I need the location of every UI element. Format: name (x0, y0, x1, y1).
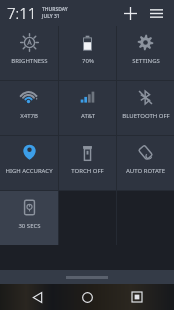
button[interactable]: AUTO ROTATE (117, 136, 174, 190)
button[interactable]: SETTINGS (117, 26, 174, 80)
button[interactable]: 30 SECS (0, 191, 58, 245)
button[interactable]: Add (118, 1, 142, 25)
button[interactable]: BRIGHTNESS (0, 26, 58, 80)
staticText: AUTO ROTATE (126, 167, 165, 175)
staticText: 70% (82, 57, 94, 65)
button[interactable]: TORCH OFF (59, 136, 116, 190)
button[interactable]: Back (24, 284, 50, 310)
staticText: HIGH ACCURACY (5, 167, 53, 175)
button[interactable]: BLUETOOTH OFF (117, 81, 174, 135)
staticText: 30 SECS (18, 222, 41, 230)
button[interactable]: Recents (124, 284, 150, 310)
button[interactable]: Collapse panel (0, 270, 174, 284)
staticText: BRIGHTNESS (11, 57, 48, 65)
staticText: SETTINGS (132, 57, 160, 65)
button[interactable]: HIGH ACCURACY (0, 136, 58, 190)
staticText: THURSDAY (42, 6, 68, 13)
staticText: BLUETOOTH OFF (122, 112, 170, 120)
button[interactable]: Menu (144, 1, 168, 25)
staticText: TORCH OFF (71, 167, 104, 175)
staticText: JULY 31 (42, 13, 60, 20)
button[interactable]: X4T7B (0, 81, 58, 135)
button[interactable]: Home (74, 284, 100, 310)
button[interactable]: 70% (59, 26, 116, 80)
button[interactable]: AT&T (59, 81, 116, 135)
staticText: 7:11 (7, 3, 37, 23)
staticText: X4T7B (20, 112, 38, 120)
staticText: AT&T (81, 112, 95, 120)
